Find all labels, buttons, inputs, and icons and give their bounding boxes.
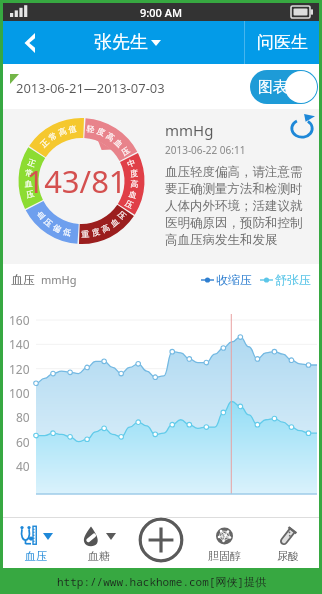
staticText: 143/81 bbox=[26, 160, 127, 202]
button[interactable]: Refresh bbox=[289, 114, 315, 140]
staticText: 收缩压 bbox=[216, 272, 252, 287]
staticText: http://www.hackhome.com[网侠]提供 bbox=[57, 574, 266, 589]
button[interactable]: Back bbox=[3, 21, 51, 64]
staticText: 舒张压 bbox=[275, 272, 311, 287]
staticText: 问医生 bbox=[257, 32, 308, 53]
staticText: mmHg bbox=[165, 120, 214, 140]
staticText: 2013-06-21—2013-07-03 bbox=[16, 79, 165, 97]
button[interactable]: 尿酸 bbox=[256, 518, 319, 568]
staticText: 9:00 AM bbox=[140, 5, 183, 20]
staticText: 血糖 bbox=[88, 549, 110, 563]
staticText: 2013-06-22 06:11 bbox=[165, 143, 246, 157]
button[interactable]: 问医生 bbox=[245, 21, 319, 64]
button[interactable]: 舒张压 bbox=[260, 272, 311, 287]
staticText: 图表 bbox=[258, 78, 288, 97]
button[interactable]: 胆固醇 bbox=[193, 518, 256, 568]
staticText: 血压 bbox=[25, 549, 47, 563]
button[interactable]: Add record bbox=[138, 517, 184, 563]
button[interactable]: 张先生 bbox=[94, 31, 161, 54]
button[interactable]: 收缩压 bbox=[201, 272, 252, 287]
staticText: 尿酸 bbox=[277, 549, 299, 563]
staticText: 张先生 bbox=[94, 31, 148, 54]
staticText: 血压轻度偏高，请注意需要正确测量方法和检测时人体内外环境；活建议就医明确原因，预… bbox=[165, 164, 309, 247]
button[interactable]: 图表 bbox=[250, 70, 318, 104]
staticText: 胆固醇 bbox=[208, 549, 241, 563]
staticText: 血压 bbox=[11, 272, 35, 287]
staticText: mmHg bbox=[41, 272, 77, 287]
button[interactable]: 血糖 bbox=[67, 518, 130, 568]
button[interactable]: 血压 bbox=[3, 518, 67, 568]
